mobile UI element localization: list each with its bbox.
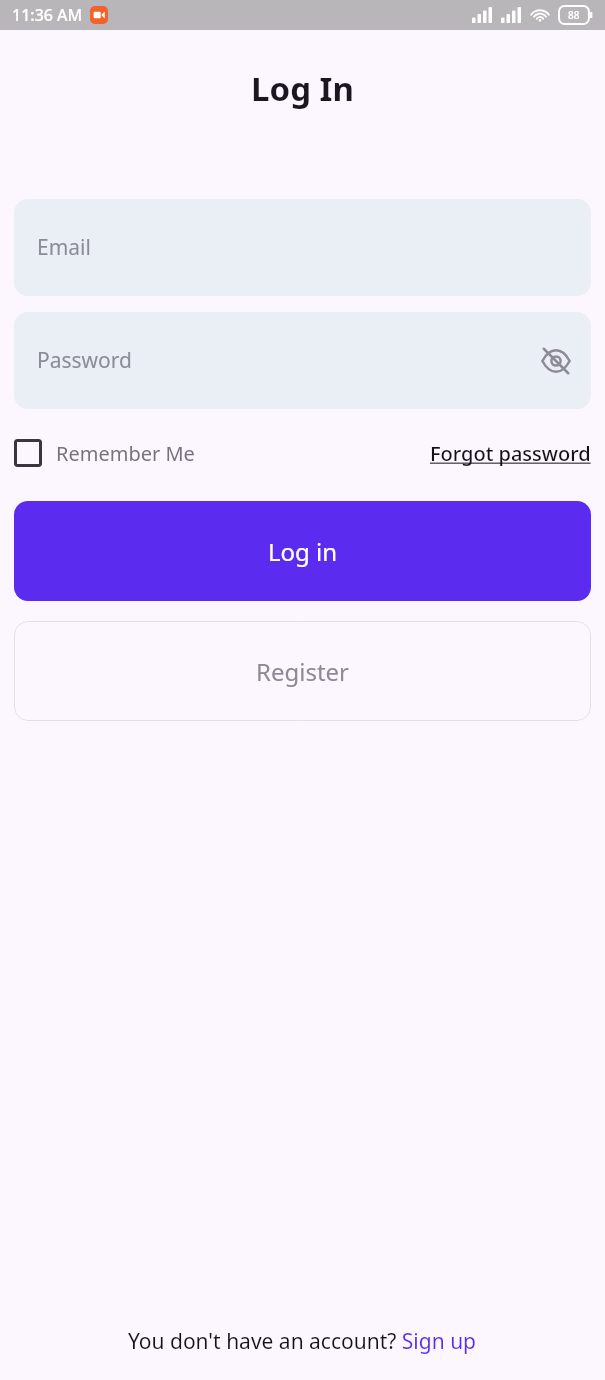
staticText: Email: [37, 233, 91, 262]
staticText: 11:36 AM: [12, 4, 83, 26]
staticText: 88: [568, 8, 580, 22]
staticText: Forgot password: [430, 440, 591, 467]
staticText: Log In: [0, 66, 605, 111]
button[interactable]: You don't have an account? Sign up: [0, 1327, 605, 1356]
button[interactable]: Email: [14, 199, 591, 296]
button[interactable]: Toggle password visibility: [539, 344, 573, 378]
staticText: Register: [256, 655, 350, 688]
button[interactable]: Register: [14, 621, 591, 721]
button[interactable]: Forgot password: [430, 440, 591, 467]
button[interactable]: Log in: [14, 501, 591, 601]
button[interactable]: Remember Me: [14, 439, 195, 467]
other: Toggle password visibility: [539, 344, 573, 378]
staticText: Log in: [268, 535, 338, 568]
staticText: You don't have an account? Sign up: [128, 1327, 477, 1356]
staticText: Remember Me: [56, 440, 195, 467]
staticText: Password: [37, 346, 132, 375]
button[interactable]: Password: [14, 312, 591, 409]
